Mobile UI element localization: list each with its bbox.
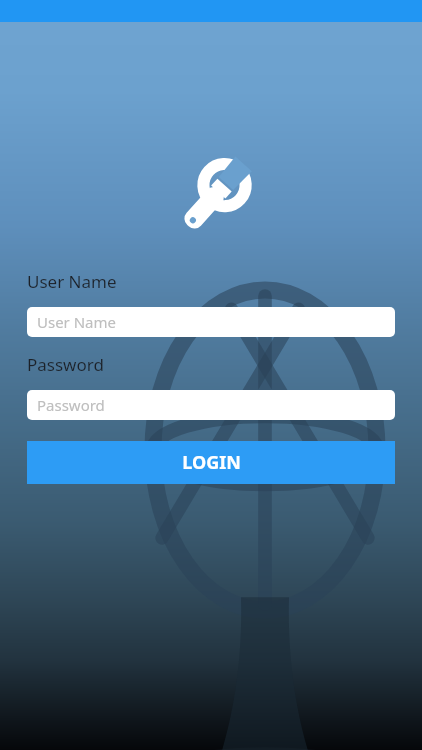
button[interactable]: LOGIN	[27, 441, 395, 484]
staticText: Password	[37, 395, 105, 415]
staticText: User Name	[37, 312, 117, 332]
staticText: LOGIN	[182, 450, 241, 475]
staticText: User Name	[27, 270, 117, 293]
staticText: Password	[27, 353, 104, 376]
button[interactable]: User Name	[27, 307, 395, 337]
button[interactable]: Password	[27, 390, 395, 420]
